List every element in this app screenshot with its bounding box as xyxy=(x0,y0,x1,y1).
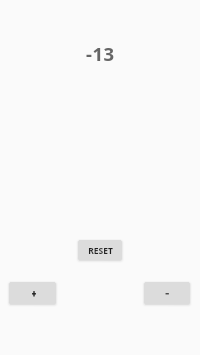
button[interactable]: RESET xyxy=(78,240,122,260)
staticText: -13 xyxy=(86,41,115,66)
button[interactable]: Increment xyxy=(9,282,56,304)
staticText: RESET xyxy=(88,245,113,257)
button[interactable]: Decrement xyxy=(144,282,190,304)
